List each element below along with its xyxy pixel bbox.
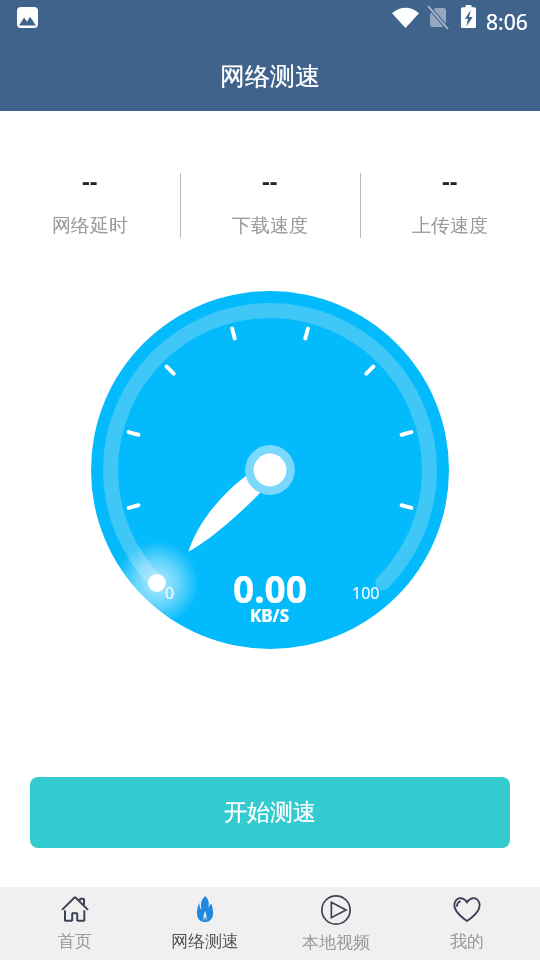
staticText: 网络延时	[52, 214, 128, 238]
staticText: --	[262, 164, 278, 197]
staticText: --	[442, 164, 458, 197]
staticText: 网络测速	[171, 931, 239, 952]
staticText: KB/S	[250, 604, 290, 627]
other: Home	[61, 896, 89, 922]
staticText: 100	[352, 582, 380, 604]
staticText: 开始测速	[224, 798, 316, 827]
button[interactable]: 开始测速	[30, 777, 510, 848]
other: Battery charging	[461, 5, 476, 28]
other: No SIM card	[430, 8, 446, 27]
other: Mine	[452, 896, 482, 922]
other: Screenshot	[17, 7, 38, 28]
other: Wi-Fi	[392, 7, 419, 28]
staticText: 本地视频	[302, 932, 370, 953]
staticText: 0.00	[233, 563, 307, 613]
button[interactable]: Local video	[270, 887, 405, 960]
other: Local video	[321, 895, 351, 925]
staticText: 上传速度	[412, 214, 488, 238]
button[interactable]: Home	[0, 887, 135, 960]
staticText: 网络测速	[220, 61, 320, 92]
other: Speed test	[192, 896, 218, 922]
staticText: 首页	[58, 931, 92, 952]
staticText: 下载速度	[232, 214, 308, 238]
staticText: 8:06	[486, 8, 528, 37]
staticText: 0	[165, 582, 175, 604]
button[interactable]: Speed test	[135, 887, 270, 960]
staticText: 我的	[450, 931, 484, 952]
staticText: --	[82, 164, 98, 197]
button[interactable]: Mine	[405, 887, 540, 960]
